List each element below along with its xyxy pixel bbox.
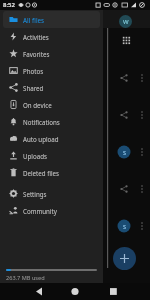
staticText: All files bbox=[23, 16, 45, 24]
staticText: S bbox=[123, 223, 127, 230]
staticText: S bbox=[123, 149, 127, 156]
button[interactable]: Settings bbox=[3, 185, 100, 202]
button[interactable]: Activities bbox=[3, 28, 100, 45]
button[interactable]: Notifications bbox=[3, 113, 100, 130]
staticText: Photos bbox=[23, 67, 44, 75]
staticText: On device bbox=[23, 101, 52, 109]
button[interactable]: Uploads bbox=[3, 147, 100, 164]
staticText: Auto upload bbox=[23, 135, 59, 143]
button[interactable]: All files bbox=[3, 11, 100, 28]
staticText: Favorites bbox=[23, 50, 50, 58]
staticText: Deleted files bbox=[23, 169, 60, 177]
staticText: Uploads bbox=[23, 152, 47, 160]
staticText: 8:52 bbox=[3, 1, 15, 9]
button[interactable]: On device bbox=[3, 96, 100, 113]
staticText: Shared bbox=[23, 84, 44, 92]
button[interactable]: Photos bbox=[3, 62, 100, 79]
button[interactable]: Favorites bbox=[3, 45, 100, 62]
staticText: 263.7 MB used bbox=[6, 274, 45, 282]
staticText: Notifications bbox=[23, 118, 60, 126]
button[interactable]: Add bbox=[113, 247, 136, 270]
button[interactable]: Auto upload bbox=[3, 130, 100, 147]
staticText: W bbox=[123, 18, 129, 26]
staticText: Settings bbox=[23, 190, 47, 198]
staticText: Activities bbox=[23, 33, 49, 41]
button[interactable]: Account bbox=[119, 15, 132, 28]
button[interactable]: Grid view bbox=[121, 35, 131, 45]
staticText: Community bbox=[23, 207, 57, 215]
button[interactable]: Shared bbox=[3, 79, 100, 96]
button[interactable]: Community bbox=[3, 202, 100, 219]
button[interactable]: Deleted files bbox=[3, 164, 100, 181]
